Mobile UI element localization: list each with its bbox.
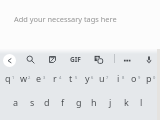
staticText: u [99,72,105,84]
button[interactable]: d [39,93,55,111]
button[interactable]: Sticker [46,53,59,66]
staticText: Add your necessary tags here [14,14,117,24]
button[interactable]: Translate [92,53,105,66]
staticText: a [13,96,19,108]
staticText: 5 [75,75,78,80]
staticText: 2 [28,75,31,80]
staticText: y [85,72,90,84]
staticText: l [140,96,143,108]
staticText: 7 [106,75,109,80]
staticText: 0 [153,75,156,80]
button[interactable]: k [118,93,134,111]
button[interactable]: More options [121,53,134,66]
button[interactable]: Back [3,54,16,67]
staticText: s [30,96,35,108]
button[interactable]: u [94,69,110,87]
staticText: 3 [43,75,46,80]
staticText: q [5,72,11,84]
staticText: i [117,72,120,84]
button[interactable]: q [0,69,16,87]
staticText: t [69,72,73,84]
staticText: GIF [70,55,81,64]
staticText: 9 [138,75,141,80]
staticText: 1 [12,75,15,80]
staticText: o [131,72,137,84]
button[interactable]: e [31,69,47,87]
button[interactable]: t [63,69,79,87]
button[interactable]: Search [24,53,37,66]
staticText: h [91,96,97,108]
staticText: d [44,96,50,108]
staticText: f [61,96,65,108]
staticText: w [20,72,28,84]
staticText: p [146,72,152,84]
staticText: 8 [122,75,125,80]
button[interactable]: i [110,69,126,87]
button[interactable]: a [8,93,24,111]
staticText: j [109,96,112,108]
staticText: k [124,96,129,108]
button[interactable]: j [102,93,118,111]
staticText: 6 [91,75,94,80]
staticText: g [76,96,82,108]
button[interactable]: w [16,69,32,87]
button[interactable]: Voice input [142,53,155,66]
button[interactable]: GIF [69,54,82,65]
staticText: 4 [59,75,62,80]
staticText: e [36,72,42,84]
button[interactable]: l [133,93,149,111]
button[interactable]: o [126,69,142,87]
button[interactable]: r [47,69,63,87]
staticText: r [53,72,57,84]
button[interactable]: y [79,69,95,87]
button[interactable]: s [24,93,40,111]
button[interactable]: g [71,93,87,111]
button[interactable]: h [86,93,102,111]
button[interactable]: p [141,69,157,87]
button[interactable]: f [55,93,71,111]
